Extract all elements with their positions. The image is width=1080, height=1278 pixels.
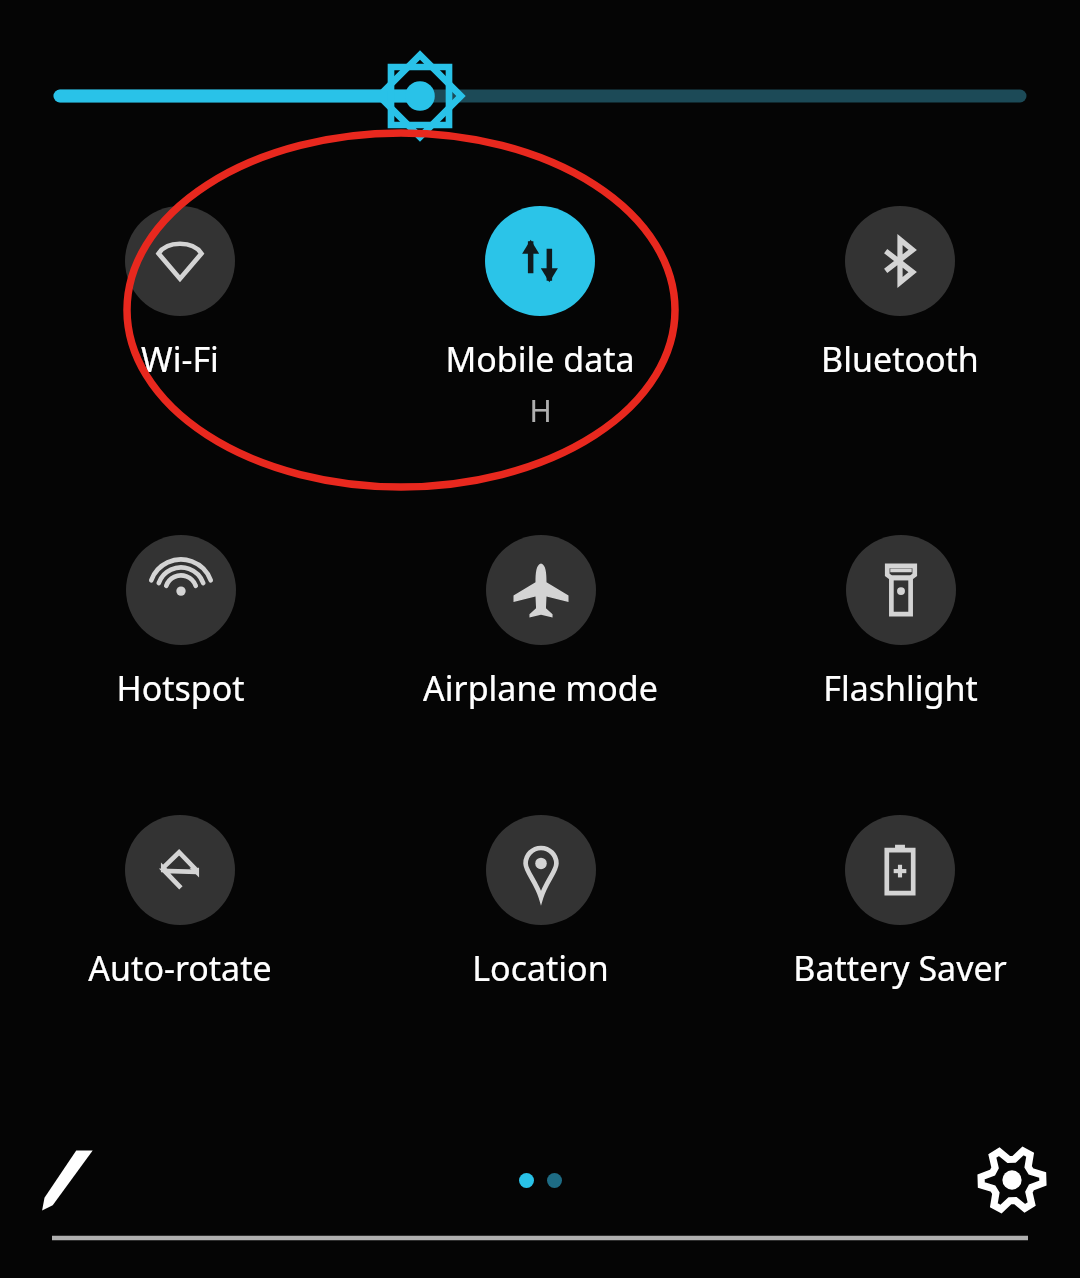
button[interactable]: Auto-rotate	[88, 815, 272, 991]
button[interactable]: Flashlight	[823, 535, 978, 711]
staticText: Bluetooth	[821, 336, 979, 382]
button[interactable]: Brightness	[0, 66, 1080, 126]
staticText: Airplane mode	[423, 665, 658, 711]
button[interactable]: Hotspot	[116, 535, 245, 711]
button[interactable]: Settings	[970, 1138, 1054, 1222]
button[interactable]: Mobile data	[445, 206, 635, 431]
staticText: Hotspot	[116, 665, 245, 711]
button[interactable]: Airplane mode	[423, 535, 658, 711]
button[interactable]: Edit	[26, 1138, 110, 1222]
staticText: Battery Saver	[793, 945, 1007, 991]
staticText: Location	[472, 945, 609, 991]
staticText: Flashlight	[823, 665, 978, 711]
staticText: Mobile data	[445, 336, 635, 382]
button[interactable]: Wi-Fi	[125, 206, 235, 382]
button[interactable]: Location	[472, 815, 609, 991]
button[interactable]: Battery Saver	[793, 815, 1007, 991]
button[interactable]: Bluetooth	[821, 206, 979, 382]
staticText: H	[529, 390, 552, 431]
staticText: Wi-Fi	[141, 336, 219, 382]
staticText: Auto-rotate	[88, 945, 272, 991]
